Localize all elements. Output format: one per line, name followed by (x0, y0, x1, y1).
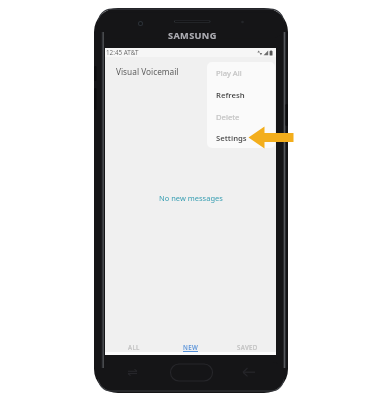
button[interactable]: Home (170, 363, 213, 382)
staticText: SAMSUNG (168, 29, 217, 42)
button[interactable]: Delete (207, 106, 275, 128)
button[interactable]: ALL (105, 335, 162, 352)
staticText: No new messages (159, 193, 223, 203)
button[interactable]: Play All (207, 62, 275, 84)
staticText: NEW (183, 343, 199, 351)
other: Callout arrow pointing to Settings (248, 126, 294, 149)
button[interactable]: SAVED (219, 335, 276, 352)
button[interactable]: NEW (162, 335, 219, 352)
staticText: Refresh (216, 90, 245, 100)
button[interactable]: Refresh (207, 84, 275, 106)
staticText: ALL (128, 343, 140, 351)
staticText: Play All (216, 68, 242, 78)
staticText: Settings (216, 133, 247, 143)
staticText: Delete (216, 112, 240, 122)
staticText: Visual Voicemail (116, 66, 179, 77)
staticText: 12:45 AT&T (106, 48, 139, 57)
button[interactable]: Settings (207, 128, 275, 148)
staticText: SAVED (237, 343, 258, 351)
